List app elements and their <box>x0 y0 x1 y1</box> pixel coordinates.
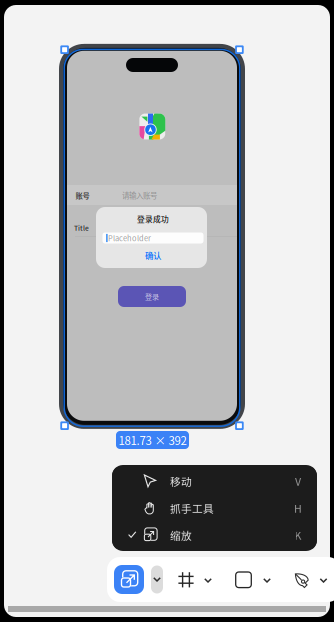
button[interactable]: Scale tool options <box>151 565 163 593</box>
staticText: 缩放 <box>170 527 192 543</box>
button[interactable]: Rectangle tool <box>231 567 255 593</box>
button[interactable]: Scale tool <box>114 565 144 594</box>
button[interactable]: 登录 <box>118 286 186 307</box>
button[interactable]: Frame tool <box>174 567 198 593</box>
staticText: Placeholder <box>108 233 151 243</box>
staticText: 181.73 × 392 <box>118 432 186 448</box>
staticText: 移动 <box>170 473 192 489</box>
staticText: 账号 <box>75 190 89 201</box>
staticText: 登录 <box>145 291 159 302</box>
staticText: 登录成功 <box>137 213 169 225</box>
staticText: 请输入账号 <box>122 190 157 201</box>
staticText: K <box>294 527 301 543</box>
staticText: Title <box>74 223 89 233</box>
button[interactable]: 移动 <box>112 467 317 494</box>
button[interactable]: Rectangle tool options <box>259 567 275 593</box>
staticText: 确认 <box>145 249 161 261</box>
staticText: 抓手工具 <box>170 500 214 516</box>
button[interactable]: 确认 <box>133 248 173 262</box>
staticText: H <box>294 500 302 516</box>
staticText: V <box>295 473 301 489</box>
button[interactable]: 缩放 <box>112 521 317 548</box>
button[interactable]: 抓手工具 <box>112 494 317 521</box>
button[interactable]: Frame tool options <box>200 567 216 593</box>
button[interactable]: Pen tool options <box>315 567 331 593</box>
button[interactable]: Pen tool <box>290 567 314 593</box>
